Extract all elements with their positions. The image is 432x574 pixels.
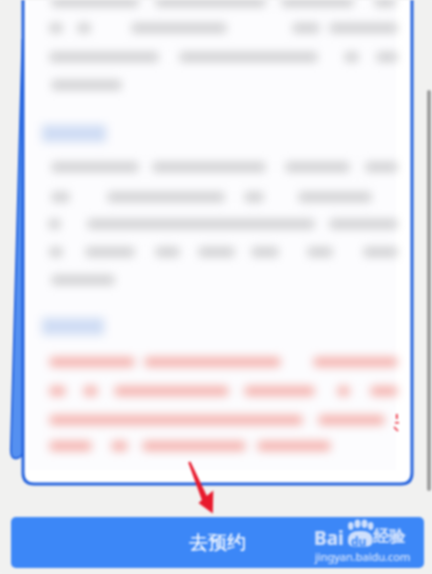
staticText: 经验	[373, 527, 405, 547]
other: Annotation arrow	[0, 0, 432, 574]
staticText: jingyan.baidu.com	[315, 549, 411, 564]
button[interactable]: 去预约	[11, 517, 424, 568]
staticText: 去预约	[189, 531, 246, 555]
button[interactable]	[23, 0, 412, 484]
staticText: du	[351, 533, 367, 549]
staticText: Bai	[314, 525, 344, 551]
